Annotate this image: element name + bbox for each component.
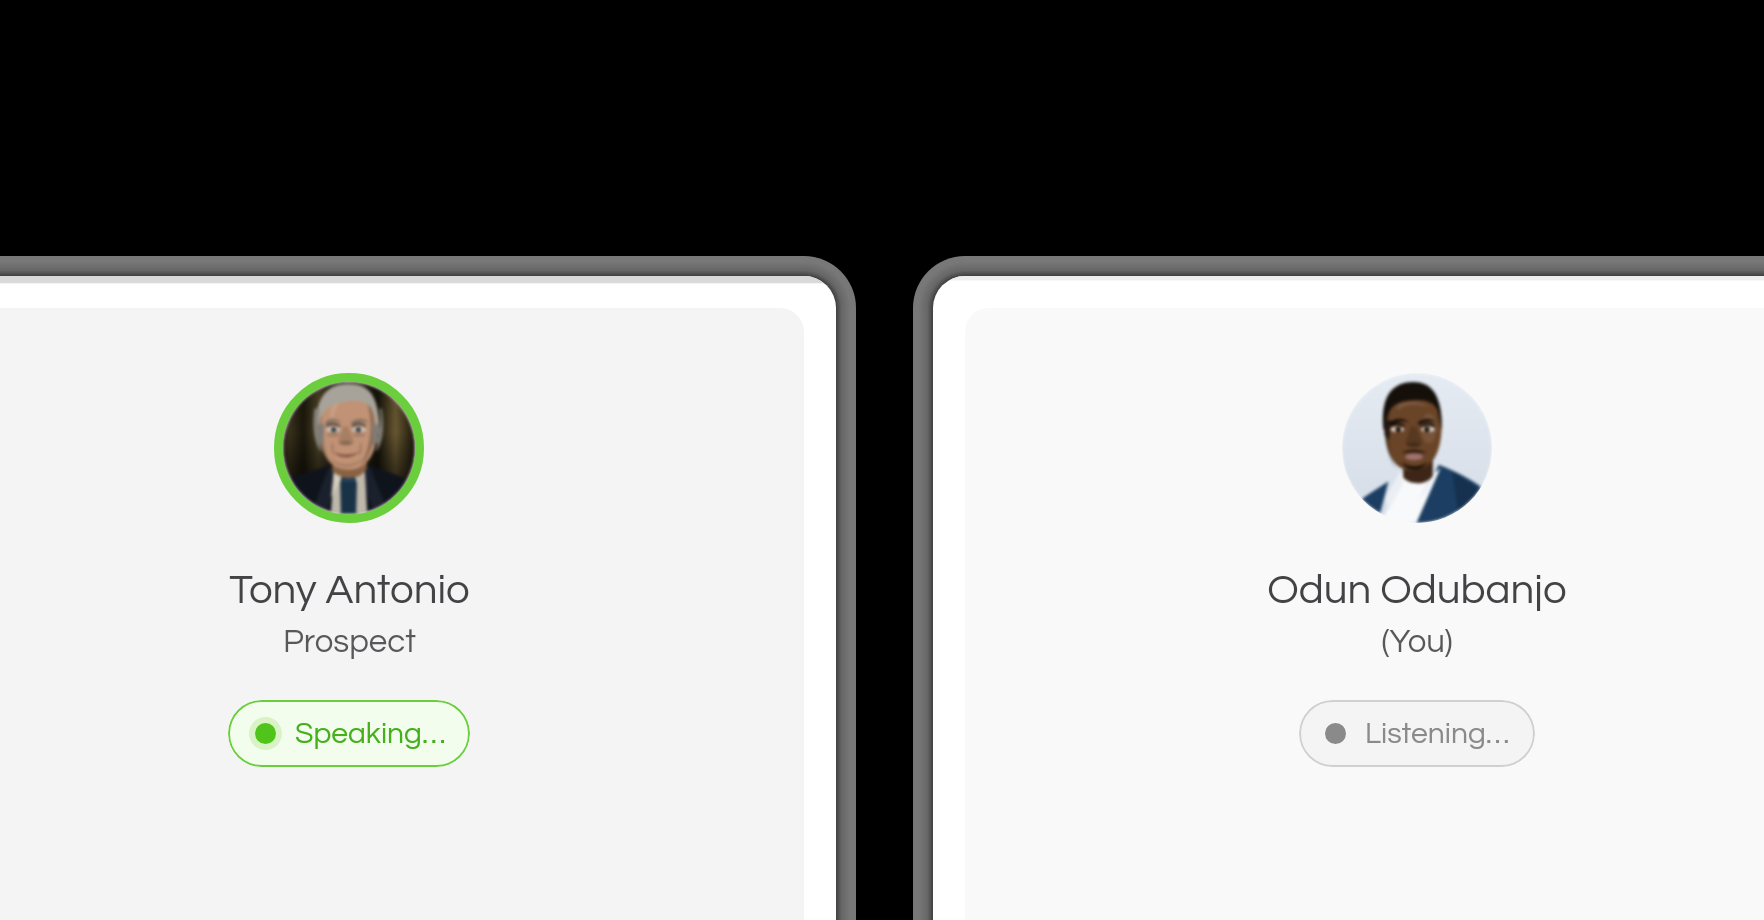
staticText: Listening… xyxy=(1365,718,1510,749)
staticText: (You) xyxy=(1381,625,1453,659)
button[interactable]: Speaking… xyxy=(228,700,470,767)
staticText: Odun Odubanjo xyxy=(1267,569,1567,612)
button[interactable]: Tony Antonio xyxy=(29,373,669,767)
button[interactable]: Listening… xyxy=(1299,700,1535,767)
staticText: Prospect xyxy=(283,625,416,659)
staticText: Tony Antonio xyxy=(229,569,470,612)
staticText: Speaking… xyxy=(295,718,446,749)
button[interactable]: Odun Odubanjo xyxy=(1097,373,1737,767)
